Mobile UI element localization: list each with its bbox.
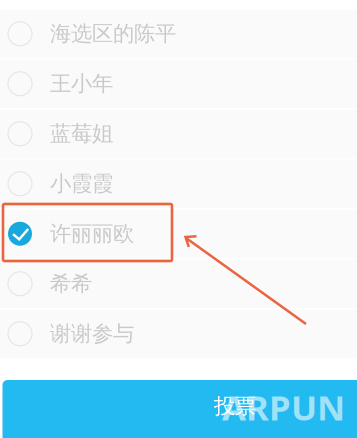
button[interactable]: 蓝莓姐 [0,109,357,158]
button[interactable]: 王小年 [0,59,357,108]
staticText: 海选区的陈平 [50,21,176,47]
staticText: ARPUN [222,384,345,430]
staticText: 许丽丽欧 [50,221,134,247]
button[interactable]: 小霞霞 [0,159,357,208]
button[interactable]: 希希 [0,259,357,308]
staticText: 希希 [50,271,92,297]
staticText: 谢谢参与 [50,321,134,347]
button[interactable]: 谢谢参与 [0,309,357,358]
button[interactable]: ARPUN [0,380,357,438]
button[interactable]: 许丽丽欧 [0,209,357,258]
staticText: 王小年 [50,71,113,97]
button[interactable]: 海选区的陈平 [0,9,357,58]
staticText: 蓝莓姐 [50,121,113,147]
staticText: 投票 [214,393,256,419]
staticText: 小霞霞 [50,171,113,197]
